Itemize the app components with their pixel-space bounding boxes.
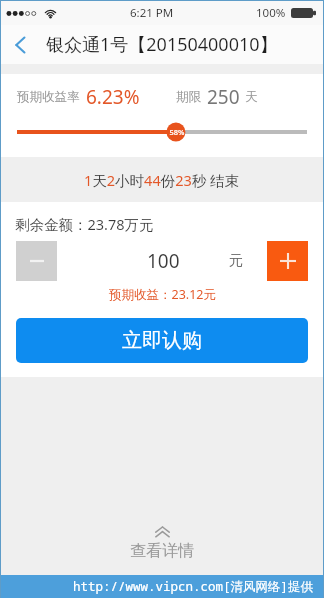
- button[interactable]: Decrease amount: [16, 241, 57, 281]
- staticText: 58%: [162, 127, 192, 137]
- staticText: http://www.vipcn.com[清风网络]提供: [73, 578, 314, 595]
- staticText: 6.23%: [86, 84, 140, 110]
- button[interactable]: Increase amount: [267, 241, 308, 281]
- staticText: 100: [147, 248, 180, 274]
- staticText: 元: [229, 252, 243, 270]
- staticText: 银众通1号【20150400010】: [46, 32, 278, 57]
- staticText: 预期收益：23.12元: [109, 286, 216, 303]
- button[interactable]: 立即认购: [16, 318, 308, 363]
- staticText: 立即认购: [122, 328, 202, 353]
- button[interactable]: 查看详情: [1, 510, 323, 575]
- staticText: 天: [245, 89, 258, 105]
- staticText: 1天2小时44份23秒 结束: [84, 170, 240, 190]
- staticText: 查看详情: [130, 541, 194, 561]
- staticText: 6:21 PM: [130, 5, 174, 21]
- staticText: 剩余金额：23.78万元: [15, 214, 154, 234]
- staticText: 100%: [256, 5, 286, 21]
- staticText: 预期收益率: [17, 89, 80, 105]
- staticText: 期限: [176, 89, 201, 105]
- staticText: 250: [207, 84, 240, 110]
- button[interactable]: Back: [1, 27, 39, 63]
